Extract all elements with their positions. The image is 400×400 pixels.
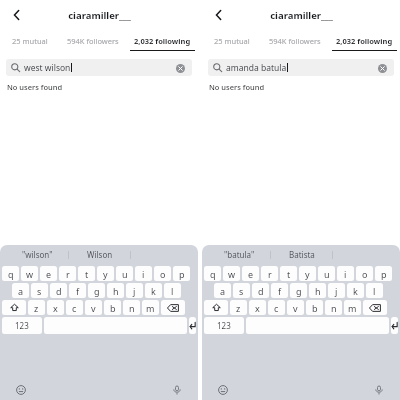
button[interactable]: p: [375, 266, 392, 281]
button[interactable]: e: [242, 266, 259, 281]
button[interactable]: 25 mutual: [202, 30, 261, 52]
button[interactable]: Back: [6, 4, 28, 26]
staticText: 2,032 following: [336, 36, 393, 46]
button[interactable]: d: [252, 283, 269, 298]
button[interactable]: Voice input: [170, 383, 184, 397]
button[interactable]: amanda batula: [208, 59, 394, 76]
button[interactable]: i: [135, 266, 152, 281]
button[interactable]: p: [173, 266, 190, 281]
button[interactable]: west wilson: [6, 59, 192, 76]
staticText: u: [324, 268, 330, 280]
button[interactable]: z: [230, 300, 247, 315]
button[interactable]: y: [299, 266, 316, 281]
button[interactable]: Voice input: [372, 383, 386, 397]
button[interactable]: 25 mutual: [0, 30, 59, 52]
button[interactable]: g: [88, 283, 105, 298]
button[interactable]: y: [97, 266, 114, 281]
button[interactable]: b: [306, 300, 323, 315]
button[interactable]: m: [142, 300, 159, 315]
button[interactable]: 123: [204, 317, 244, 334]
button[interactable]: Back: [208, 4, 230, 26]
staticText: x: [255, 302, 260, 314]
button[interactable]: j: [328, 283, 345, 298]
button[interactable]: Emoji: [216, 383, 230, 397]
button[interactable]: l: [366, 283, 383, 298]
button[interactable]: [391, 317, 398, 334]
button[interactable]: "wilson": [6, 245, 68, 264]
button[interactable]: w: [223, 266, 240, 281]
button[interactable]: [363, 300, 387, 315]
button[interactable]: e: [40, 266, 57, 281]
staticText: p: [179, 268, 185, 280]
button[interactable]: a: [12, 283, 29, 298]
button[interactable]: q: [204, 266, 221, 281]
button[interactable]: h: [107, 283, 124, 298]
button[interactable]: r: [59, 266, 76, 281]
staticText: b: [312, 302, 318, 314]
button[interactable]: f: [69, 283, 86, 298]
button[interactable]: t: [280, 266, 297, 281]
button[interactable]: Clear text: [173, 61, 187, 75]
staticText: 123: [15, 320, 29, 331]
button[interactable]: 594K followers: [59, 30, 127, 52]
button[interactable]: s: [233, 283, 250, 298]
button[interactable]: "batula": [208, 245, 270, 264]
staticText: e: [248, 268, 254, 280]
staticText: k: [151, 285, 156, 297]
button[interactable]: Batista: [271, 245, 332, 264]
button[interactable]: b: [104, 300, 121, 315]
staticText: 123: [217, 320, 231, 331]
button[interactable]: o: [356, 266, 373, 281]
button[interactable]: r: [261, 266, 278, 281]
button[interactable]: Clear text: [375, 61, 389, 75]
staticText: m: [146, 302, 155, 314]
button[interactable]: q: [2, 266, 19, 281]
button[interactable]: i: [337, 266, 354, 281]
button[interactable]: o: [154, 266, 171, 281]
staticText: z: [34, 302, 39, 314]
button[interactable]: n: [325, 300, 342, 315]
button[interactable]: z: [28, 300, 45, 315]
staticText: e: [46, 268, 52, 280]
button[interactable]: f: [271, 283, 288, 298]
button[interactable]: u: [116, 266, 133, 281]
button[interactable]: 594K followers: [261, 30, 329, 52]
staticText: k: [353, 285, 358, 297]
button[interactable]: j: [126, 283, 143, 298]
button[interactable]: 2,032 following: [127, 30, 198, 52]
button[interactable]: [189, 317, 196, 334]
button[interactable]: Emoji: [14, 383, 28, 397]
button[interactable]: l: [164, 283, 181, 298]
button[interactable]: 123: [2, 317, 42, 334]
button[interactable]: [161, 300, 185, 315]
button[interactable]: c: [66, 300, 83, 315]
button[interactable]: u: [318, 266, 335, 281]
staticText: f: [76, 285, 80, 297]
button[interactable]: s: [31, 283, 48, 298]
button[interactable]: [204, 300, 228, 315]
staticText: No users found: [7, 82, 63, 92]
button[interactable]: a: [214, 283, 231, 298]
button[interactable]: m: [344, 300, 361, 315]
button[interactable]: n: [123, 300, 140, 315]
button[interactable]: k: [145, 283, 162, 298]
button[interactable]: Wilson: [69, 245, 130, 264]
staticText: d: [56, 285, 62, 297]
button[interactable]: d: [50, 283, 67, 298]
button[interactable]: w: [21, 266, 38, 281]
button[interactable]: g: [290, 283, 307, 298]
button[interactable]: k: [347, 283, 364, 298]
button[interactable]: v: [85, 300, 102, 315]
button[interactable]: h: [309, 283, 326, 298]
button[interactable]: v: [287, 300, 304, 315]
button[interactable]: x: [47, 300, 64, 315]
button[interactable]: c: [268, 300, 285, 315]
button[interactable]: t: [78, 266, 95, 281]
button[interactable]: 2,032 following: [329, 30, 400, 52]
button[interactable]: x: [249, 300, 266, 315]
button[interactable]: [2, 300, 26, 315]
